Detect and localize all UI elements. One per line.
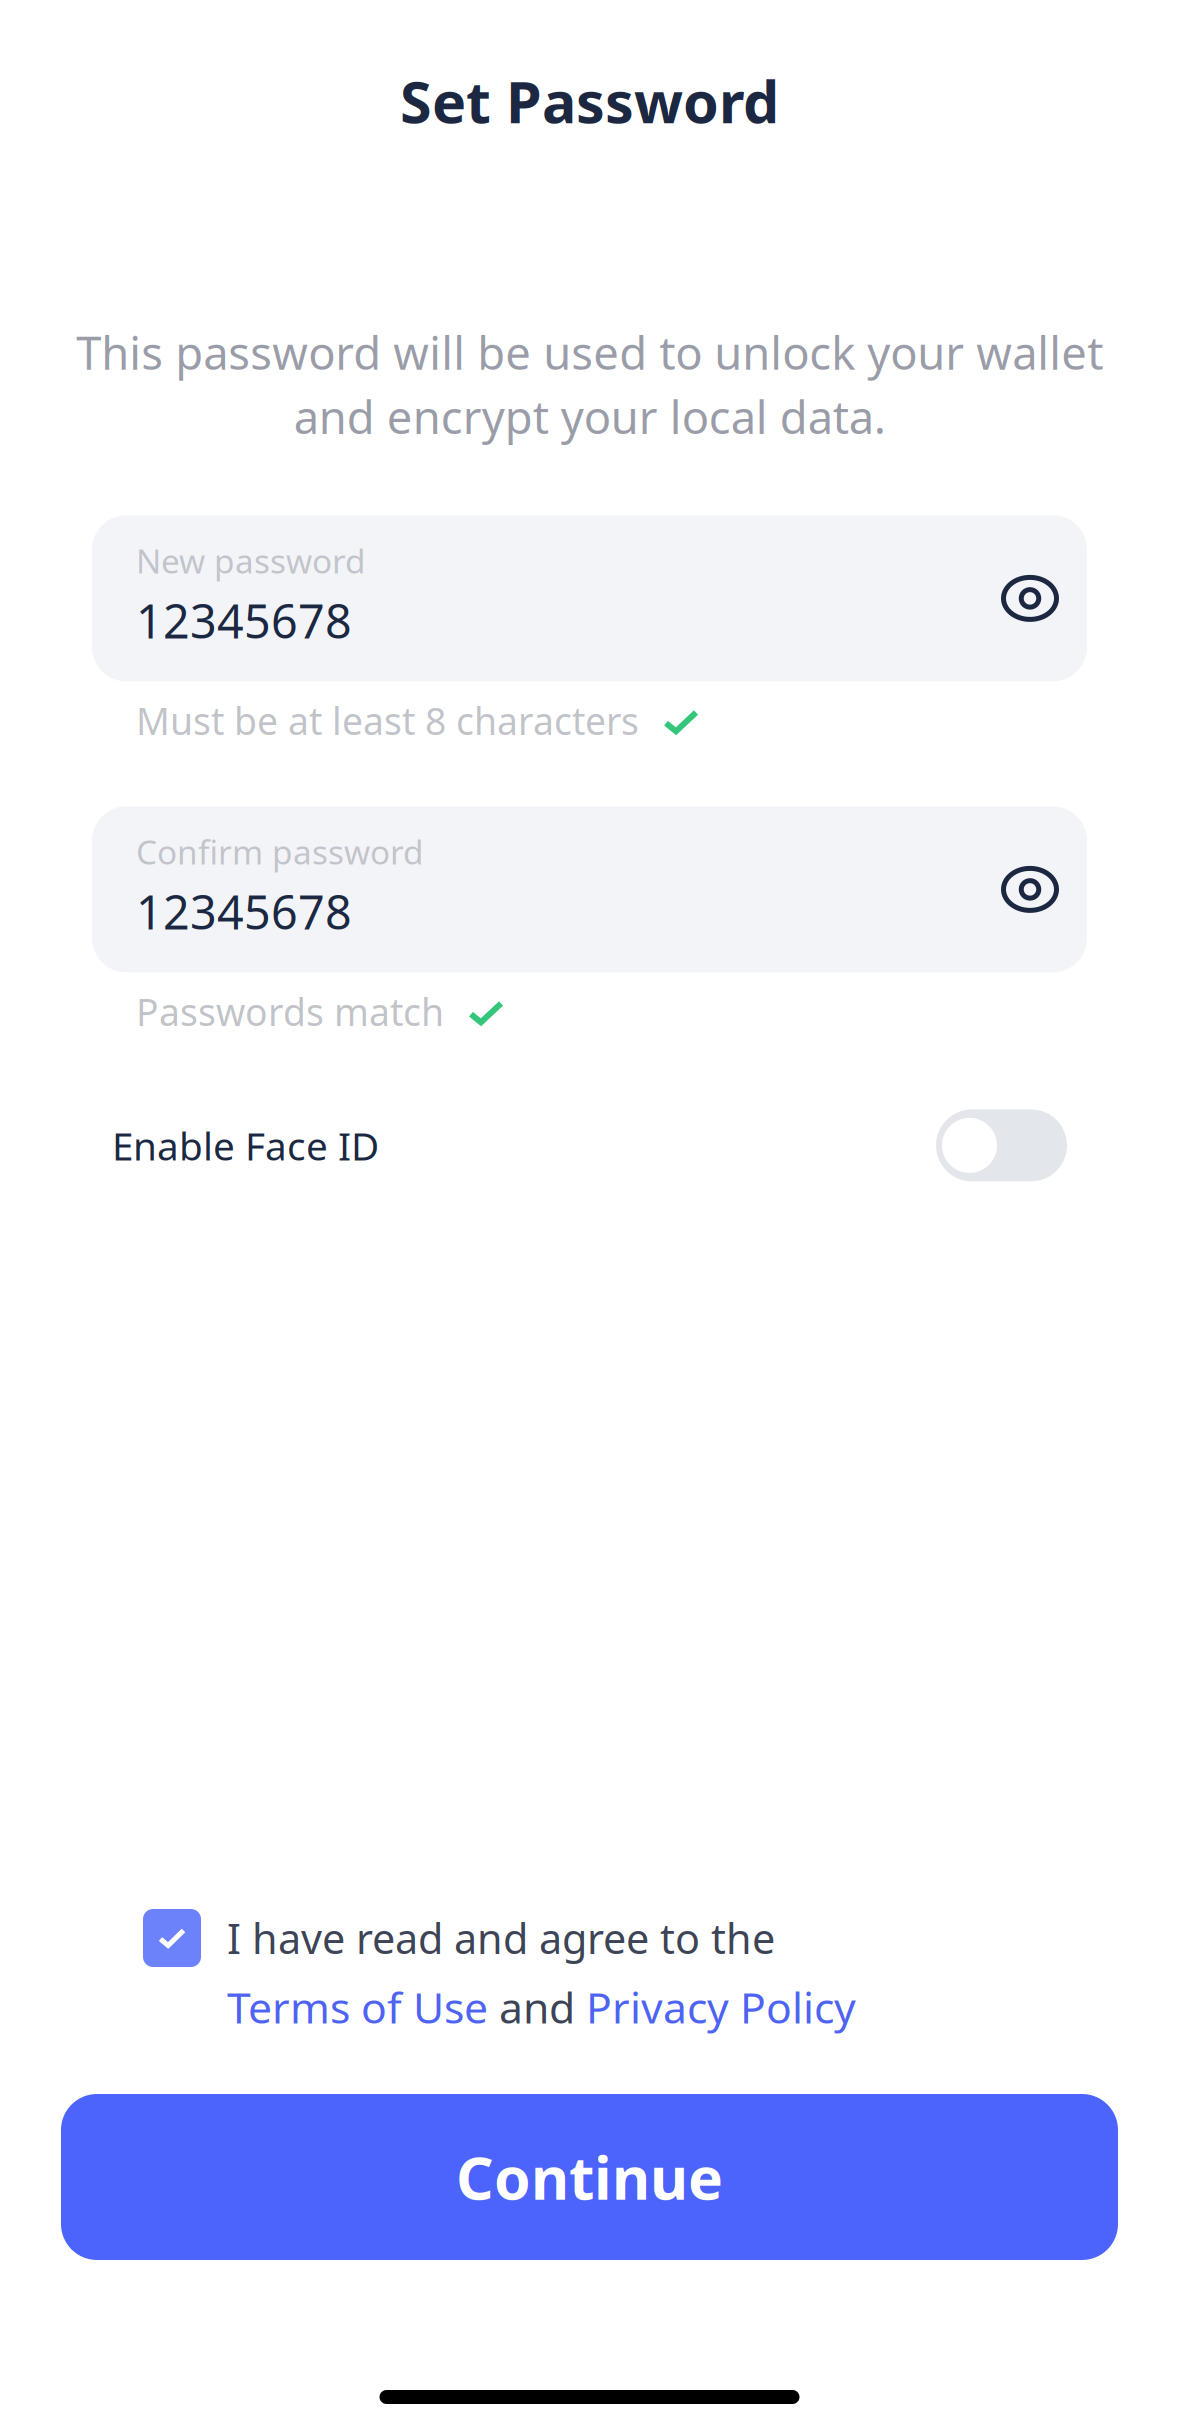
staticText: Confirm password	[136, 829, 424, 874]
staticText: Terms of Use	[227, 1979, 488, 2035]
staticText: New password	[136, 538, 366, 583]
staticText: Privacy Policy	[586, 1979, 856, 2035]
button[interactable]: Show password	[975, 834, 1085, 944]
staticText: This password will be used to unlock you…	[76, 322, 1103, 446]
staticText: Enable Face ID	[112, 1120, 379, 1171]
button[interactable]: Privacy Policy	[586, 1979, 856, 2035]
button[interactable]: Continue	[61, 2094, 1118, 2260]
button[interactable]: Show password	[975, 543, 1085, 653]
staticText: Must be at least 8 characters	[136, 696, 639, 745]
staticText: 12345678	[136, 589, 352, 651]
button[interactable]: Enable Face ID	[0, 1109, 1179, 1181]
staticText: Passwords match	[136, 987, 444, 1036]
button[interactable]: Terms of Use	[227, 1979, 488, 2035]
staticText: and	[488, 1979, 586, 2035]
button[interactable]: I agree to the Terms of Use and Privacy …	[143, 1909, 201, 1967]
staticText: Continue	[456, 2138, 723, 2216]
staticText: I have read and agree to the	[227, 1911, 775, 1965]
staticText: Set Password	[400, 63, 779, 139]
staticText: 12345678	[136, 880, 352, 942]
